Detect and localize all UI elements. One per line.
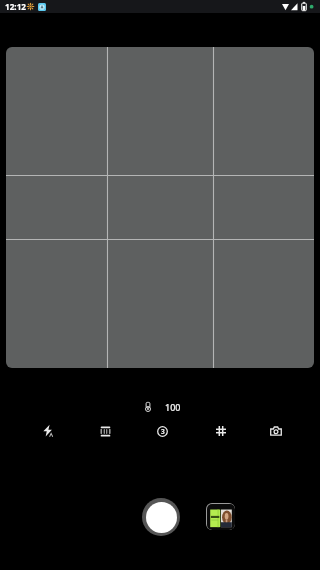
- button[interactable]: Shutter: [142, 498, 180, 536]
- button[interactable]: Aspect ratio: [91, 417, 119, 445]
- button[interactable]: Timer: [148, 417, 176, 445]
- staticText: 12:12: [5, 1, 27, 12]
- button[interactable]: Camera preview: [6, 47, 314, 368]
- staticText: 100: [165, 401, 181, 413]
- button[interactable]: Gallery: [206, 503, 235, 530]
- button[interactable]: Grid: [207, 417, 235, 445]
- staticText: 3: [161, 427, 165, 436]
- button[interactable]: Flash auto: [33, 416, 61, 444]
- button[interactable]: Switch camera: [262, 417, 290, 445]
